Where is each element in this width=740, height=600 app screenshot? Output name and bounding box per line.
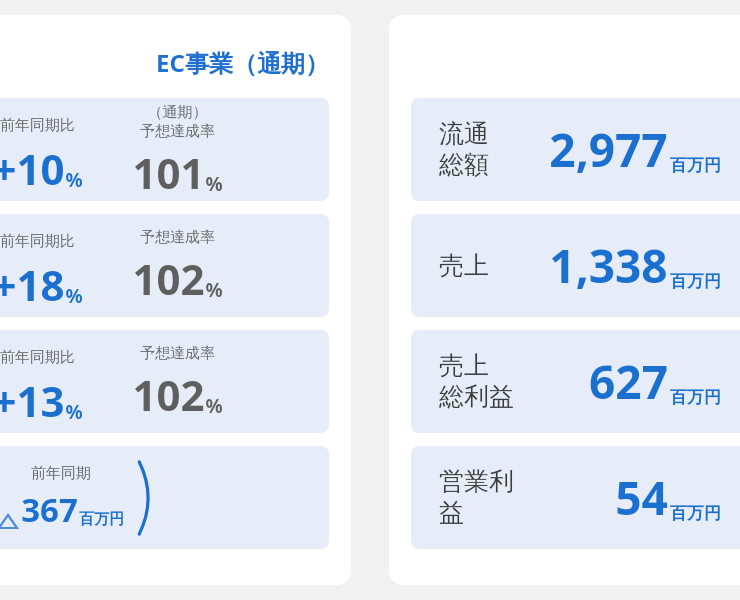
staticText: 1,338: [549, 234, 668, 297]
staticText: +10: [0, 140, 65, 197]
staticText: 百万円: [670, 387, 721, 408]
staticText: %: [205, 171, 223, 197]
staticText: 百万円: [670, 271, 721, 292]
staticText: %: [205, 277, 223, 303]
staticText: 前年同期比: [0, 116, 75, 135]
button[interactable]: 売上: [0, 214, 329, 317]
staticText: EC事業（通期）: [156, 46, 329, 79]
staticText: %: [205, 393, 223, 419]
staticText: +13: [0, 372, 65, 429]
staticText: 百万円: [670, 155, 721, 176]
staticText: %: [65, 167, 83, 193]
staticText: 流通 総額: [439, 118, 489, 181]
staticText: （通期） 予想達成率: [140, 103, 215, 141]
staticText: %: [65, 283, 83, 309]
staticText: 百万円: [670, 503, 721, 524]
staticText: 102: [132, 250, 205, 307]
staticText: 百万円: [79, 510, 124, 529]
staticText: 627: [589, 350, 668, 413]
button[interactable]: 営業利益: [411, 446, 740, 549]
staticText: 前年同期比: [0, 232, 75, 251]
staticText: 営業利益: [439, 466, 531, 529]
staticText: 予想達成率: [140, 344, 215, 363]
staticText: 367: [21, 487, 78, 532]
staticText: 102: [132, 366, 205, 423]
button[interactable]: 全社（4-6月期）: [389, 15, 740, 585]
button[interactable]: 売上 総利益: [411, 330, 740, 433]
staticText: 予想達成率: [140, 228, 215, 247]
staticText: 54: [615, 466, 668, 529]
staticText: 前年同期: [31, 464, 91, 483]
staticText: %: [65, 399, 83, 425]
staticText: 2,977: [549, 118, 668, 181]
button[interactable]: 売上: [411, 214, 740, 317]
button[interactable]: 営業利益: [0, 446, 329, 549]
staticText: 売上: [439, 250, 489, 281]
staticText: 前年同期比: [0, 348, 75, 367]
button[interactable]: 売上 総利益: [0, 330, 329, 433]
staticText: 101: [132, 144, 205, 201]
button[interactable]: EC事業（通期）: [0, 15, 351, 585]
button[interactable]: 流通 総額: [0, 98, 329, 201]
staticText: 売上 総利益: [439, 350, 514, 413]
staticText: +18: [0, 256, 65, 313]
button[interactable]: 流通 総額: [411, 98, 740, 201]
